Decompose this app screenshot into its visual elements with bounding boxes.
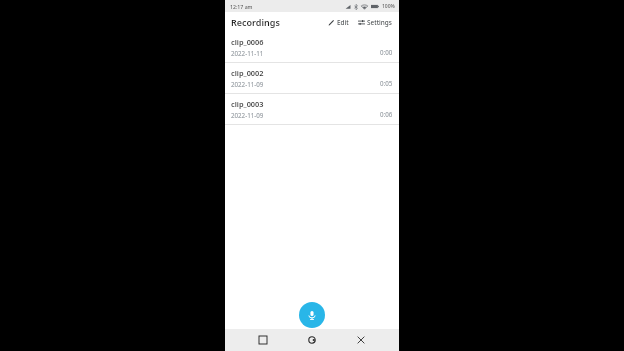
staticText: Edit <box>337 18 349 27</box>
staticText: Recordings <box>231 16 280 28</box>
staticText: Settings <box>367 18 392 27</box>
staticText: 2022-11-09 <box>231 80 264 88</box>
button[interactable]: clip_0003 <box>225 94 399 124</box>
staticText: 12:17 am <box>230 3 253 10</box>
button[interactable]: clip_0006 <box>225 32 399 62</box>
staticText: 0:00 <box>380 48 393 56</box>
button[interactable]: Settings <box>356 15 394 30</box>
staticText: clip_0006 <box>231 37 264 47</box>
button[interactable]: clip_0002 <box>225 63 399 93</box>
button[interactable]: Back <box>350 329 372 351</box>
staticText: clip_0003 <box>231 99 264 109</box>
staticText: 0:06 <box>380 110 393 118</box>
staticText: 0:05 <box>380 79 393 87</box>
staticText: clip_0002 <box>231 68 264 78</box>
button[interactable]: Home <box>301 329 323 351</box>
button[interactable]: Edit <box>326 15 351 30</box>
button[interactable]: Record <box>299 302 325 328</box>
staticText: 2022-11-11 <box>231 49 264 57</box>
button[interactable]: Recent apps <box>252 329 274 351</box>
staticText: 2022-11-09 <box>231 111 264 119</box>
staticText: 100% <box>382 3 395 10</box>
